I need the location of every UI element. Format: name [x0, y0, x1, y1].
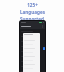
button[interactable]	[24, 55, 39, 57]
button[interactable]	[24, 39, 39, 41]
staticText: Supported	[20, 16, 44, 22]
button[interactable]	[21, 50, 44, 53]
button[interactable]: Selected	[43, 47, 45, 50]
button[interactable]	[21, 35, 44, 38]
button[interactable]	[21, 70, 44, 72]
button[interactable]	[24, 47, 39, 49]
button[interactable]	[24, 51, 39, 53]
button[interactable]: More options	[20, 24, 45, 29]
button[interactable]	[24, 43, 39, 45]
button[interactable]	[21, 60, 44, 63]
button[interactable]	[21, 40, 44, 43]
button[interactable]	[24, 59, 39, 61]
button[interactable]	[24, 67, 39, 69]
button[interactable]	[24, 63, 39, 65]
button[interactable]	[21, 30, 44, 33]
staticText: Languages	[20, 9, 45, 15]
button[interactable]	[21, 45, 44, 48]
button[interactable]	[21, 55, 44, 58]
staticText: 125+	[27, 2, 38, 8]
button[interactable]: More options	[41, 25, 44, 28]
button[interactable]	[21, 65, 44, 68]
